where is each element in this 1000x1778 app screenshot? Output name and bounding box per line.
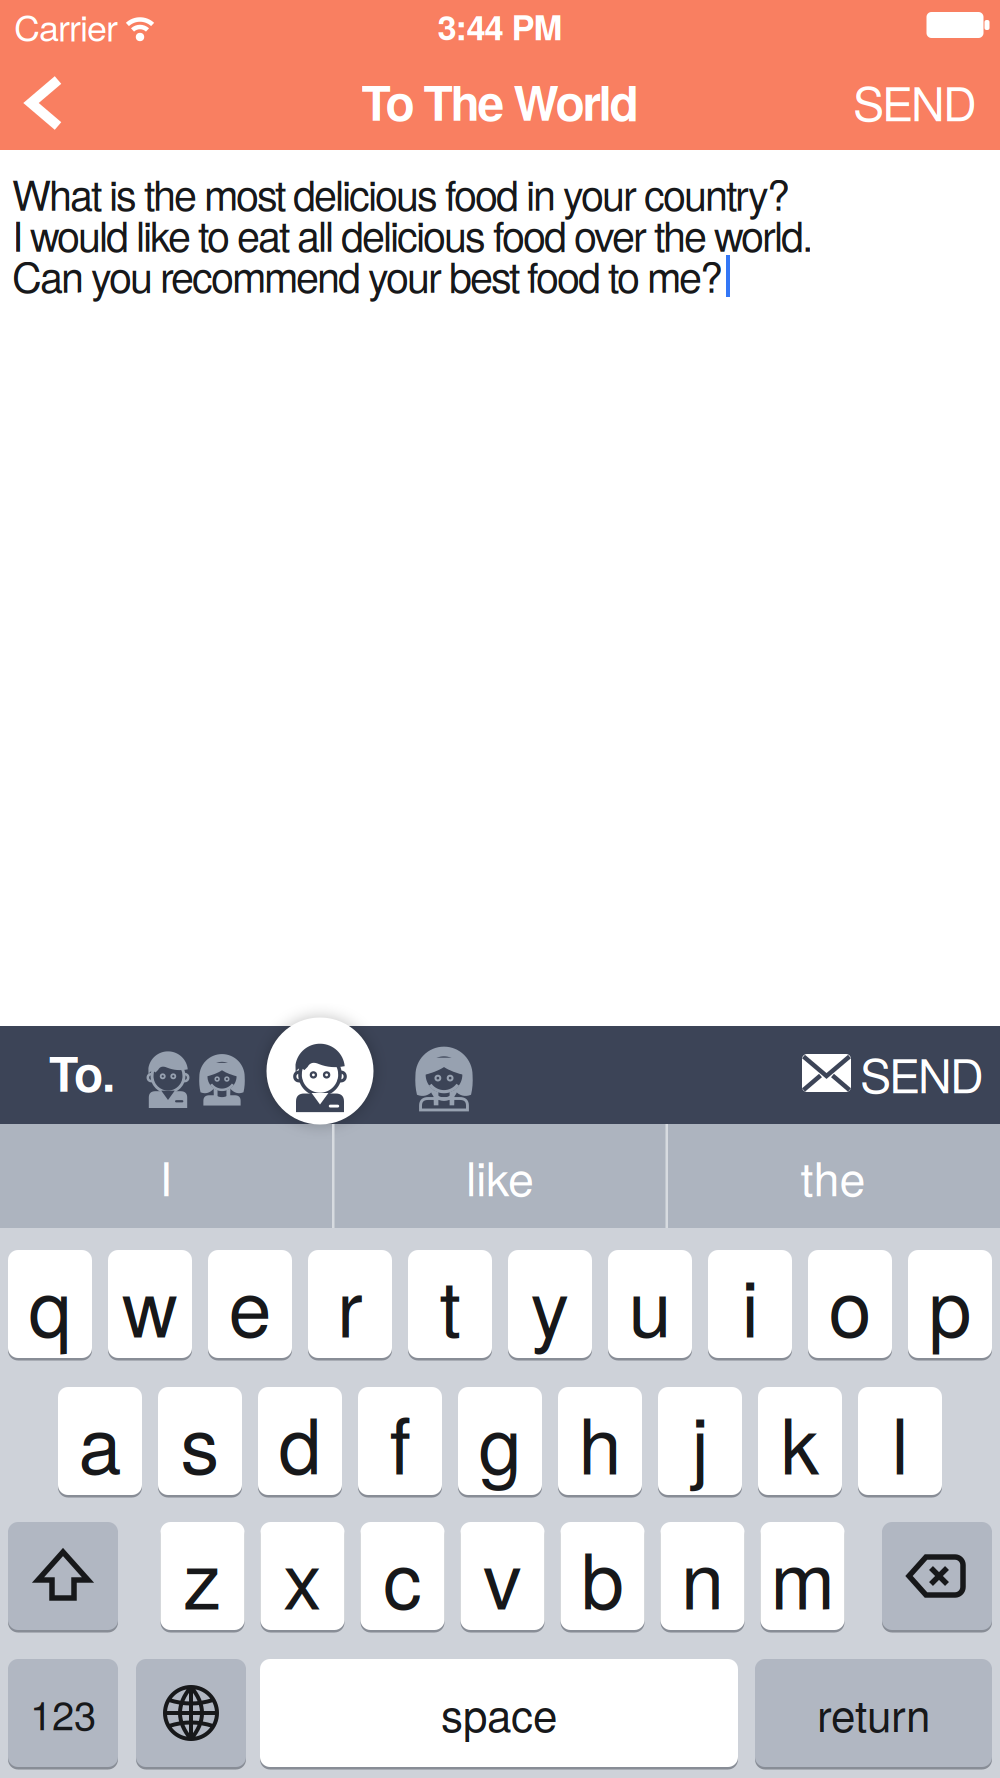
staticText: the	[800, 1143, 865, 1209]
button[interactable]: r	[308, 1250, 392, 1358]
button[interactable]: u	[608, 1250, 692, 1358]
button[interactable]: i	[708, 1250, 792, 1358]
button[interactable]: I	[16, 1124, 316, 1228]
button[interactable]: z	[160, 1522, 244, 1630]
button[interactable]: Next keyboard	[136, 1659, 246, 1767]
button[interactable]: SEND	[853, 68, 977, 134]
staticText: g	[478, 1386, 521, 1496]
button[interactable]: d	[258, 1387, 342, 1495]
staticText: f	[389, 1386, 410, 1496]
staticText: 123	[30, 1684, 96, 1742]
staticText: r	[337, 1249, 363, 1359]
staticText: s	[180, 1386, 219, 1496]
staticText: v	[483, 1521, 522, 1631]
button[interactable]: Back	[16, 72, 72, 134]
button[interactable]: x	[260, 1522, 344, 1630]
button[interactable]: v	[460, 1522, 544, 1630]
staticText: w	[122, 1249, 178, 1359]
button[interactable]: a	[58, 1387, 142, 1495]
staticText: m	[770, 1521, 834, 1631]
staticText: Can you recommend your best food to me?	[12, 245, 723, 305]
button[interactable]: o	[808, 1250, 892, 1358]
button[interactable]: c	[360, 1522, 444, 1630]
button[interactable]: Shift	[8, 1522, 118, 1630]
button[interactable]: p	[908, 1250, 992, 1358]
staticText: k	[780, 1386, 819, 1496]
staticText: like	[466, 1143, 534, 1209]
staticText: p	[928, 1249, 971, 1359]
staticText: z	[183, 1521, 222, 1631]
staticText: b	[581, 1521, 624, 1631]
staticText: SEND	[853, 68, 977, 134]
button[interactable]: y	[508, 1250, 592, 1358]
staticText: u	[628, 1249, 671, 1359]
button[interactable]: space	[260, 1659, 738, 1767]
button[interactable]: return	[755, 1659, 992, 1767]
staticText: What is the most delicious food in your …	[12, 163, 790, 223]
staticText: e	[228, 1249, 271, 1359]
staticText: i	[741, 1249, 758, 1359]
button[interactable]: t	[408, 1250, 492, 1358]
button[interactable]: q	[8, 1250, 92, 1358]
staticText: c	[383, 1521, 422, 1631]
button[interactable]: e	[208, 1250, 292, 1358]
staticText: SEND	[860, 1040, 984, 1106]
staticText: To.	[49, 1038, 115, 1106]
staticText: To The World	[361, 67, 638, 135]
button[interactable]: f	[358, 1387, 442, 1495]
button[interactable]: k	[758, 1387, 842, 1495]
button[interactable]: Delete	[882, 1522, 992, 1630]
staticText: 3:44 PM	[437, 1, 562, 51]
button[interactable]: j	[658, 1387, 742, 1495]
staticText: t	[439, 1249, 460, 1359]
staticText: return	[817, 1681, 930, 1744]
staticText: l	[891, 1386, 908, 1496]
button[interactable]: h	[558, 1387, 642, 1495]
staticText: x	[283, 1521, 322, 1631]
button[interactable]: the	[683, 1124, 983, 1228]
staticText: Carrier	[14, 0, 118, 52]
staticText: h	[578, 1386, 621, 1496]
button[interactable]: 123	[8, 1659, 118, 1767]
staticText: I	[159, 1143, 172, 1209]
button[interactable]: like	[350, 1124, 650, 1228]
button[interactable]: Send to boy	[266, 1017, 373, 1124]
button[interactable]: Send to girl	[392, 1035, 496, 1123]
staticText: space	[441, 1681, 557, 1744]
staticText: d	[278, 1386, 321, 1496]
staticText: q	[28, 1249, 71, 1359]
button[interactable]: SEND	[802, 1040, 984, 1106]
staticText: y	[530, 1249, 569, 1359]
button[interactable]: b	[560, 1522, 644, 1630]
staticText: n	[681, 1521, 724, 1631]
button[interactable]: w	[108, 1250, 192, 1358]
button[interactable]: s	[158, 1387, 242, 1495]
button[interactable]: l	[858, 1387, 942, 1495]
staticText: j	[691, 1386, 708, 1496]
staticText: I would like to eat all delicious food o…	[12, 204, 813, 264]
button[interactable]: g	[458, 1387, 542, 1495]
button[interactable]: m	[760, 1522, 844, 1630]
button[interactable]: Send to friends	[141, 1037, 251, 1117]
button[interactable]: n	[660, 1522, 744, 1630]
staticText: a	[78, 1386, 121, 1496]
staticText: o	[828, 1249, 871, 1359]
